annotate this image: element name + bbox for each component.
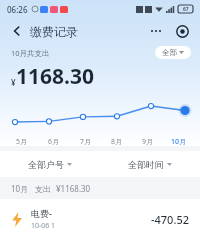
staticText: 10月	[11, 183, 29, 194]
staticText: ¥	[11, 77, 16, 88]
staticText: 全部时间	[128, 159, 164, 170]
staticText: 全部户号	[28, 159, 64, 170]
button[interactable]: 更多	[146, 21, 166, 41]
staticText: 电费-	[31, 207, 52, 219]
staticText: 10-06 1	[31, 221, 56, 231]
button[interactable]: 全部户号	[0, 151, 100, 177]
staticText: 1168.30	[16, 62, 94, 91]
button[interactable]: 客服	[172, 21, 192, 41]
staticText: 10月	[171, 137, 187, 146]
staticText: 7月	[80, 137, 92, 146]
button[interactable]: 电费-	[0, 199, 200, 239]
staticText: ¥1168.30	[56, 183, 91, 194]
staticText: -470.52	[151, 212, 189, 227]
staticText: 06:26	[7, 4, 28, 15]
staticText: 10月共支出	[11, 48, 50, 58]
staticText: 67	[183, 6, 189, 13]
staticText: 8月	[111, 137, 123, 146]
staticText: 6月	[48, 137, 60, 146]
staticText: 全部	[162, 48, 177, 57]
button[interactable]: 返回	[8, 22, 26, 40]
button[interactable]: 全部时间	[100, 151, 200, 177]
staticText: 支出	[35, 184, 51, 194]
staticText: 缴费记录	[30, 24, 78, 39]
button[interactable]: 全部	[155, 46, 191, 59]
staticText: 9月	[142, 137, 154, 146]
staticText: 5月	[16, 137, 28, 146]
